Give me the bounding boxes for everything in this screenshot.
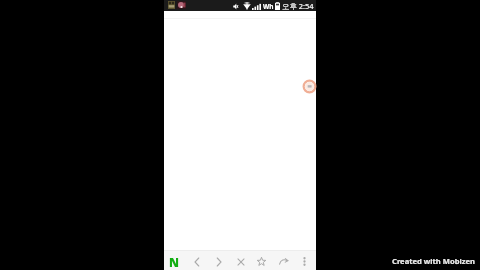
staticText: Created with Mobizen <box>392 256 475 266</box>
button[interactable]: Back <box>186 251 207 270</box>
button[interactable]: Naver home <box>165 251 186 270</box>
staticText: 오후 2:54 <box>282 1 314 11</box>
button[interactable]: Bookmark <box>251 251 272 270</box>
staticText: N <box>169 254 180 270</box>
button[interactable]: Close <box>230 251 251 270</box>
staticText: Wh <box>263 2 274 11</box>
button[interactable]: Floating badge <box>303 80 316 93</box>
button[interactable]: More options <box>294 251 315 270</box>
button[interactable]: Forward <box>208 251 229 270</box>
staticText: Created with Mobizen <box>392 256 475 266</box>
button[interactable]: Share <box>273 251 294 270</box>
